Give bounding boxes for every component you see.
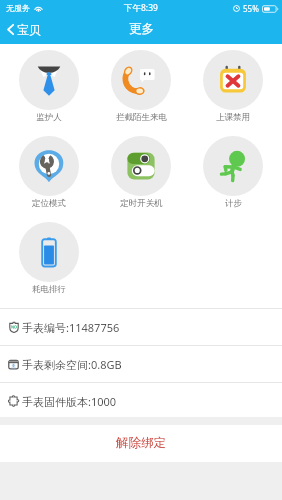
staticText: 更多: [129, 21, 154, 37]
staticText: 定位模式: [32, 198, 66, 209]
button[interactable]: 定位模式: [3, 136, 95, 209]
staticText: 宝贝: [17, 22, 41, 37]
button[interactable]: 手表编号:11487756: [0, 309, 282, 345]
staticText: 耗电排行: [32, 284, 66, 295]
button[interactable]: 上课禁用: [187, 50, 279, 123]
other: Back: [7, 24, 14, 35]
staticText: 监护人: [36, 112, 62, 123]
staticText: 上课禁用: [216, 112, 250, 123]
staticText: 手表剩余空间:0.8GB: [22, 357, 122, 372]
staticText: 无服务: [6, 3, 30, 13]
button[interactable]: 手表剩余空间:0.8GB: [0, 346, 282, 382]
staticText: 手表固件版本:1000: [22, 394, 117, 409]
button[interactable]: 手表固件版本:1000: [0, 383, 282, 419]
staticText: 定时开关机: [120, 198, 163, 209]
button[interactable]: 监护人: [3, 50, 95, 123]
button[interactable]: 解除绑定: [0, 425, 282, 461]
button[interactable]: 耗电排行: [3, 222, 95, 295]
staticText: 解除绑定: [116, 435, 166, 451]
staticText: 55%: [243, 3, 259, 14]
button[interactable]: 计步: [187, 136, 279, 209]
button[interactable]: 拦截陌生来电: [95, 50, 187, 123]
staticText: 拦截陌生来电: [116, 112, 167, 123]
staticText: 计步: [225, 198, 242, 209]
button[interactable]: Back: [0, 19, 47, 40]
staticText: 下午8:39: [124, 2, 158, 14]
staticText: 手表编号:11487756: [22, 320, 120, 335]
button[interactable]: 定时开关机: [95, 136, 187, 209]
